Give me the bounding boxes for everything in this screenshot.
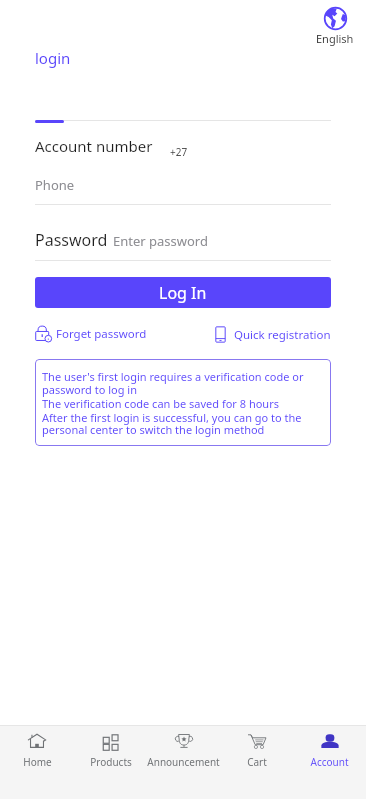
staticText: Forget password: [56, 326, 147, 342]
staticText: Announcement: [147, 755, 220, 769]
button[interactable]: Cart: [220, 726, 293, 769]
staticText: password to log in: [42, 382, 137, 397]
button[interactable]: Account: [293, 726, 366, 769]
staticText: The user's first login requires a verifi…: [42, 369, 304, 384]
button[interactable]: Home: [0, 726, 74, 769]
staticText: Quick registration: [234, 327, 331, 343]
staticText: After the first login is successful, you…: [42, 410, 302, 425]
button[interactable]: Forget password: [35, 325, 147, 343]
staticText: Cart: [247, 755, 267, 769]
button[interactable]: Language English: [316, 3, 354, 46]
button[interactable]: Announcement: [147, 726, 220, 769]
staticText: Password: [35, 229, 108, 251]
staticText: English: [316, 31, 354, 46]
button[interactable]: Log In: [35, 277, 331, 308]
staticText: Account: [310, 755, 349, 769]
staticText: personal center to switch the login meth…: [42, 422, 265, 437]
staticText: Account number: [35, 136, 153, 156]
button[interactable]: Quick registration: [214, 326, 331, 343]
staticText: Phone: [35, 176, 75, 194]
staticText: Products: [90, 755, 132, 769]
staticText: Log In: [159, 282, 207, 304]
staticText: The verification code can be saved for 8…: [42, 396, 279, 411]
button[interactable]: login: [35, 48, 71, 68]
staticText: Enter password: [113, 232, 208, 250]
button[interactable]: Products: [74, 726, 147, 769]
staticText: Home: [23, 755, 52, 769]
staticText: +27: [170, 145, 188, 159]
